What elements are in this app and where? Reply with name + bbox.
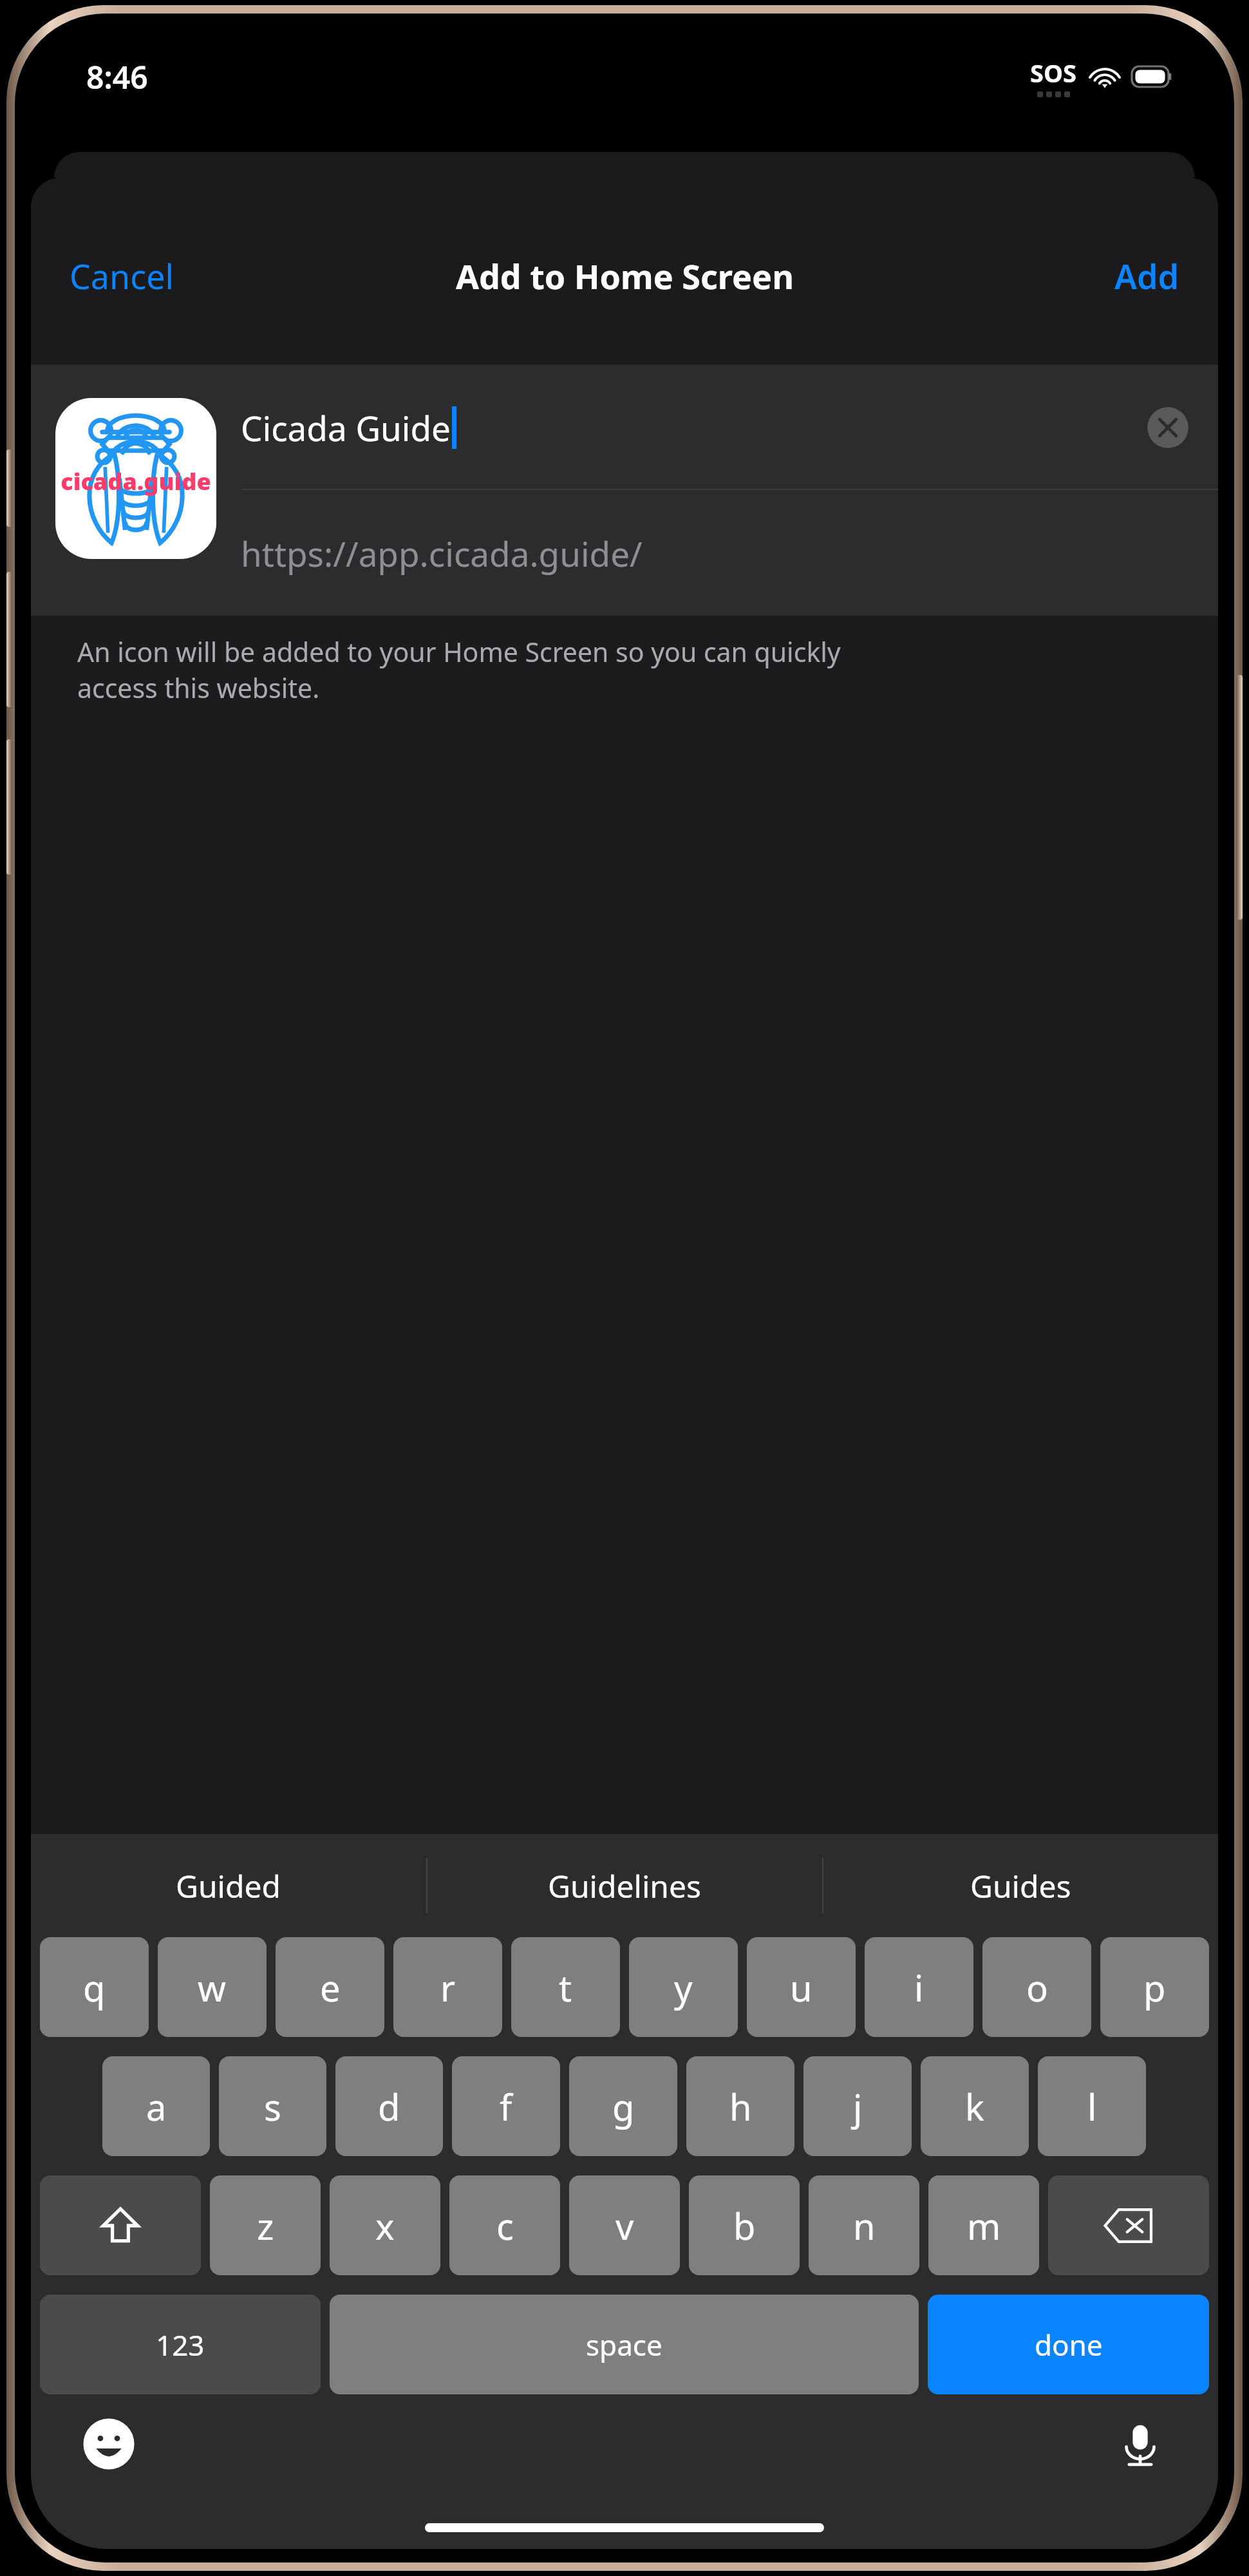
button[interactable]: s	[219, 2056, 326, 2156]
staticText: cicada.guide	[61, 466, 211, 497]
staticText: e	[320, 1963, 341, 2012]
staticText: Add	[1114, 253, 1179, 299]
button[interactable]: Guides	[823, 1834, 1218, 1937]
staticText: w	[198, 1963, 227, 2012]
button[interactable]: j	[803, 2056, 912, 2156]
button[interactable]: Dictation	[1113, 2416, 1168, 2472]
button[interactable]: b	[689, 2175, 800, 2275]
button[interactable]: q	[40, 1937, 149, 2037]
staticText: o	[1026, 1963, 1048, 2012]
staticText: p	[1143, 1963, 1166, 2012]
button[interactable]: p	[1100, 1937, 1209, 2037]
button[interactable]: d	[335, 2056, 443, 2156]
staticText: b	[733, 2201, 756, 2250]
button[interactable]: e	[276, 1937, 384, 2037]
staticText: l	[1087, 2082, 1097, 2131]
staticText: 8:46	[86, 56, 148, 98]
staticText: https://app.cicada.guide/	[241, 530, 643, 576]
staticText: space	[586, 2325, 662, 2364]
staticText: y	[674, 1963, 693, 2012]
button[interactable]: a	[102, 2056, 210, 2156]
button[interactable]: u	[747, 1937, 856, 2037]
staticText: f	[500, 2082, 512, 2131]
staticText: m	[967, 2201, 1001, 2250]
button[interactable]: z	[210, 2175, 321, 2275]
button[interactable]: Shift	[40, 2175, 201, 2275]
button[interactable]: m	[928, 2175, 1039, 2275]
staticText: a	[146, 2082, 167, 2131]
button[interactable]: Emoji	[81, 2416, 136, 2472]
button[interactable]: done	[928, 2295, 1209, 2394]
button[interactable]: t	[511, 1937, 620, 2037]
staticText: j	[853, 2082, 863, 2131]
staticText: Guides	[970, 1865, 1071, 1907]
button[interactable]: n	[809, 2175, 919, 2275]
staticText: v	[615, 2201, 634, 2250]
button[interactable]: Backspace	[1048, 2175, 1209, 2275]
staticText: c	[496, 2201, 514, 2250]
button[interactable]: w	[158, 1937, 267, 2037]
staticText: Guided	[176, 1865, 281, 1907]
button[interactable]: f	[452, 2056, 560, 2156]
staticText: Cicada Guide	[241, 404, 451, 451]
button[interactable]: h	[686, 2056, 794, 2156]
staticText: Guidelines	[548, 1865, 702, 1907]
staticText: An icon will be added to your Home Scree…	[77, 634, 841, 706]
button[interactable]: Guided	[31, 1834, 426, 1937]
button[interactable]: Guidelines	[427, 1834, 822, 1937]
button[interactable]: y	[629, 1937, 738, 2037]
button[interactable]: v	[569, 2175, 680, 2275]
button[interactable]: k	[921, 2056, 1029, 2156]
button[interactable]: Add	[1100, 243, 1194, 309]
staticText: d	[378, 2082, 400, 2131]
staticText: s	[264, 2082, 281, 2131]
staticText: t	[559, 1963, 572, 2012]
staticText: q	[83, 1963, 106, 2012]
button[interactable]: 123	[40, 2295, 321, 2394]
staticText: x	[375, 2201, 395, 2250]
staticText: g	[612, 2082, 635, 2131]
button[interactable]: https://app.cicada.guide/	[216, 490, 1218, 616]
button[interactable]: Cicada Guide	[216, 404, 1218, 451]
button[interactable]: space	[330, 2295, 919, 2394]
button[interactable]: i	[865, 1937, 973, 2037]
staticText: SOS	[1030, 56, 1076, 90]
button[interactable]: r	[393, 1937, 502, 2037]
button[interactable]: o	[982, 1937, 1091, 2037]
button[interactable]: Cancel	[55, 243, 188, 309]
button[interactable]: c	[449, 2175, 560, 2275]
staticText: i	[914, 1963, 924, 2012]
staticText: n	[853, 2201, 876, 2250]
button[interactable]: x	[330, 2175, 440, 2275]
button[interactable]: g	[569, 2056, 677, 2156]
staticText: r	[440, 1963, 456, 2012]
staticText: Cancel	[70, 253, 174, 299]
staticText: 123	[156, 2325, 205, 2364]
button[interactable]: Clear text	[1147, 407, 1188, 448]
button[interactable]: l	[1038, 2056, 1146, 2156]
staticText: k	[965, 2082, 984, 2131]
staticText: z	[257, 2201, 274, 2250]
staticText: done	[1035, 2325, 1103, 2364]
staticText: h	[729, 2082, 752, 2131]
staticText: u	[790, 1963, 812, 2012]
staticText: Add to Home Screen	[456, 253, 794, 299]
